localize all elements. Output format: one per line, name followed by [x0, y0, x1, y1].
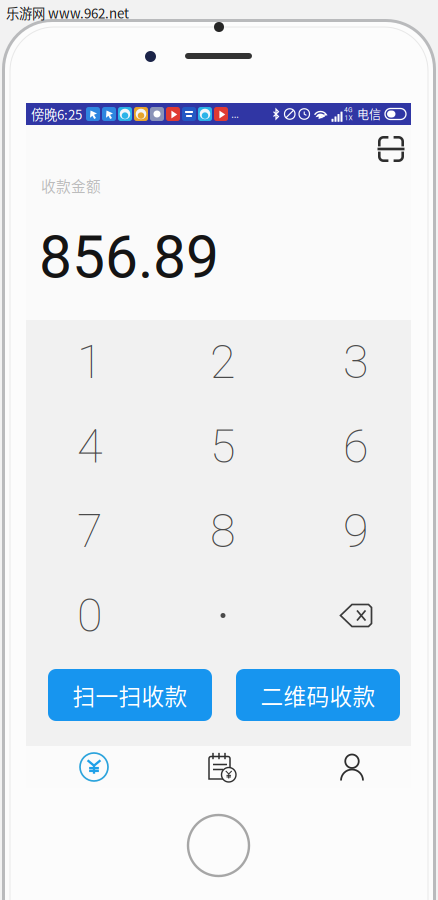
button[interactable]: 7: [23, 489, 156, 573]
staticText: …: [231, 107, 239, 121]
staticText: 9: [343, 504, 369, 558]
staticText: 856.89: [39, 223, 219, 292]
staticText: 电信: [357, 105, 381, 123]
button[interactable]: 1: [23, 320, 156, 404]
staticText: 6: [343, 419, 369, 474]
staticText: 1X: [344, 114, 352, 122]
staticText: 7: [77, 504, 103, 558]
button[interactable]: Collect payment: [34, 746, 154, 788]
staticText: 二维码收款: [260, 679, 375, 711]
staticText: 4G: [344, 106, 353, 114]
button[interactable]: Profile: [292, 746, 412, 788]
button[interactable]: Delete: [289, 573, 422, 658]
staticText: 2: [210, 335, 236, 389]
staticText: 3: [343, 335, 369, 389]
button[interactable]: 5: [156, 404, 289, 489]
staticText: 4: [77, 419, 103, 474]
button[interactable]: 9: [289, 489, 422, 573]
button[interactable]: 扫一扫收款: [48, 669, 212, 721]
staticText: 1: [77, 335, 103, 389]
staticText: 傍晚6:25: [31, 104, 82, 124]
button[interactable]: 2: [156, 320, 289, 404]
button[interactable]: 6: [289, 404, 422, 489]
button[interactable]: Scan QR code: [365, 127, 417, 171]
button[interactable]: Decimal point: [156, 573, 289, 658]
button[interactable]: 4: [23, 404, 156, 489]
button[interactable]: 8: [156, 489, 289, 573]
staticText: 收款金额: [41, 175, 101, 196]
staticText: 0: [77, 588, 103, 643]
button[interactable]: 二维码收款: [236, 669, 400, 721]
button[interactable]: 3: [289, 320, 422, 404]
staticText: 5: [210, 419, 236, 474]
staticText: 8: [210, 504, 236, 558]
staticText: 乐游网 www.962.net: [6, 3, 129, 22]
button[interactable]: Bills: [162, 746, 282, 788]
staticText: 扫一扫收款: [72, 679, 187, 711]
button[interactable]: 0: [23, 573, 156, 658]
